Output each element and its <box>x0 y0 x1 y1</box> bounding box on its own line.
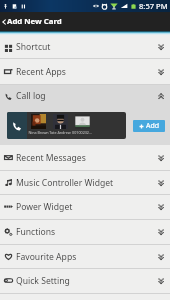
staticText: Shortcut <box>16 41 51 53</box>
staticText: Power Widget <box>16 201 73 213</box>
staticText: Tate Andrew <box>49 130 71 135</box>
button[interactable]: Tate Andrew <box>49 112 71 139</box>
staticText: Nina Brown <box>28 130 49 135</box>
button[interactable]: Favourite Apps <box>0 244 170 269</box>
staticText: 8:57 PM <box>139 1 168 11</box>
staticText: Add New Card <box>7 16 62 27</box>
staticText: Add <box>146 121 160 131</box>
button[interactable]: Back <box>0 12 170 31</box>
staticText: Quick Setting <box>16 275 70 287</box>
button[interactable]: Functions <box>0 219 170 244</box>
staticText: Music Controller Widget <box>16 177 114 189</box>
button[interactable]: Add <box>133 120 165 132</box>
button[interactable]: Recent Apps <box>0 59 170 84</box>
staticText: Recent Apps <box>16 66 66 78</box>
button[interactable]: Quick Setting <box>0 268 170 293</box>
staticText: Functions <box>16 226 56 238</box>
staticText: 00100232... <box>72 130 92 135</box>
button[interactable]: Call log <box>0 84 170 108</box>
button[interactable]: Recent Messages <box>0 145 170 170</box>
button[interactable]: Call <box>7 112 27 139</box>
staticText: Recent Messages <box>16 152 86 164</box>
button[interactable]: Shortcut <box>0 35 170 59</box>
button[interactable]: Nina Brown <box>27 112 49 139</box>
button[interactable]: Music Controller Widget <box>0 170 170 195</box>
staticText: Favourite Apps <box>16 251 77 263</box>
button[interactable]: 00100232... <box>71 112 93 139</box>
button[interactable]: Power Widget <box>0 194 170 219</box>
staticText: Call log <box>16 90 46 102</box>
